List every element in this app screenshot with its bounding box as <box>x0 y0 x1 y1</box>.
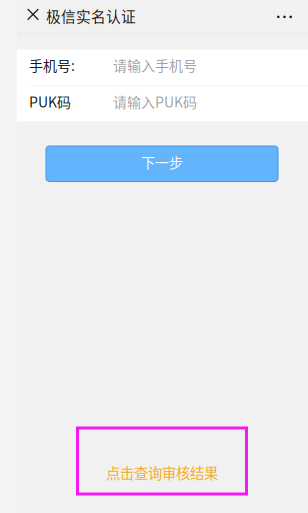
staticText: 手机号: <box>29 55 75 75</box>
button[interactable]: 点击查询审核结果 <box>77 428 246 494</box>
staticText: 点击查询审核结果 <box>106 462 218 483</box>
staticText: 极信实名认证 <box>46 5 136 26</box>
button[interactable]: 下一步 <box>46 146 278 181</box>
staticText: 请输入PUK码 <box>113 91 197 112</box>
staticText: PUK码 <box>29 91 71 112</box>
staticText: 下一步 <box>141 152 183 172</box>
button[interactable]: Close <box>22 0 44 33</box>
button[interactable]: More <box>261 0 308 33</box>
staticText: 请输入手机号 <box>113 55 197 75</box>
